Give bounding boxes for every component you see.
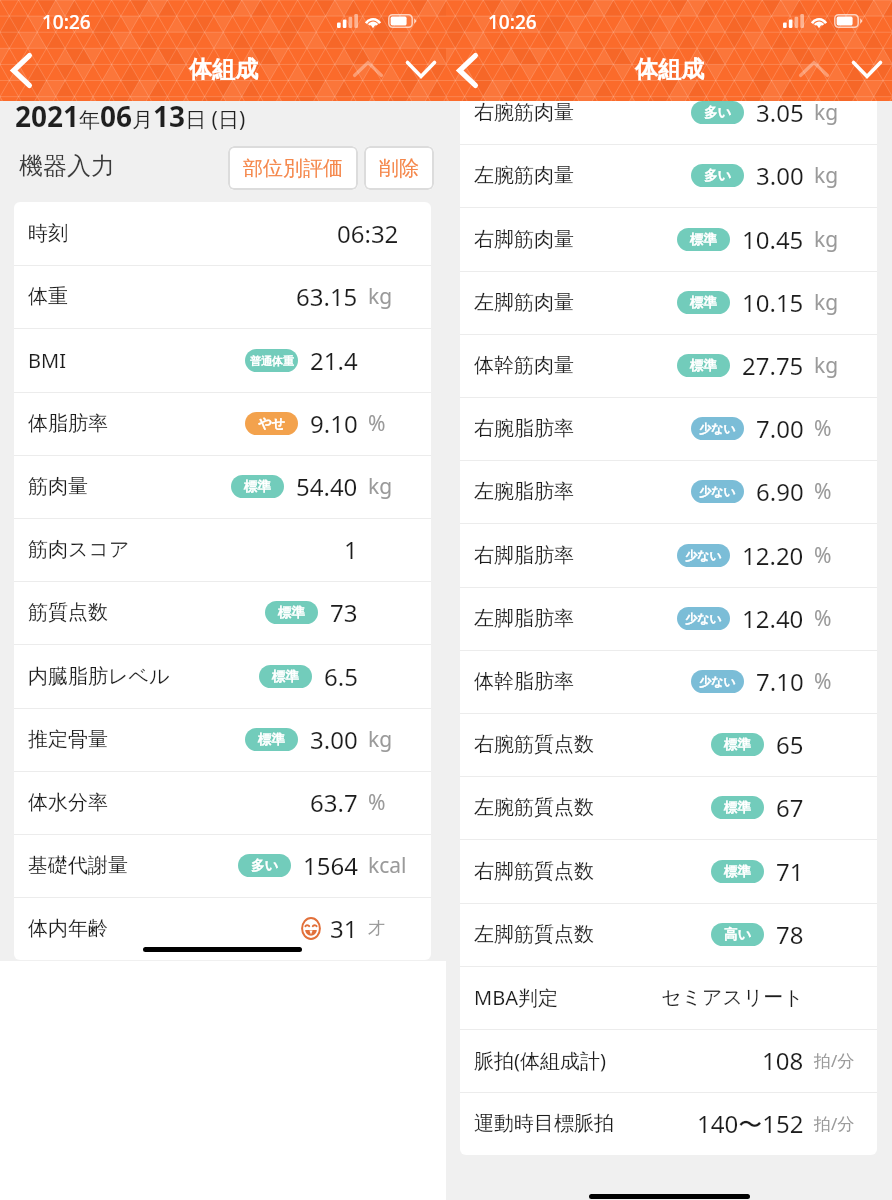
button[interactable]: 左脚脂肪率 bbox=[460, 587, 877, 650]
button[interactable]: 右腕筋肉量 bbox=[460, 81, 877, 144]
staticText: 普通体重 bbox=[250, 354, 294, 368]
button[interactable]: 内臓脂肪レベル bbox=[14, 644, 431, 708]
staticText: 体幹脂肪率 bbox=[474, 669, 574, 694]
button[interactable]: 基礎代謝量 bbox=[14, 834, 431, 897]
staticText: 筋肉スコア bbox=[28, 537, 130, 562]
staticText: 標準 bbox=[278, 604, 305, 621]
staticText: 標準 bbox=[258, 731, 285, 748]
button[interactable]: 右脚筋肉量 bbox=[460, 207, 877, 271]
button[interactable]: 左腕筋質点数 bbox=[460, 776, 877, 839]
staticText: 標準 bbox=[724, 863, 751, 880]
staticText: kg bbox=[368, 725, 393, 754]
button[interactable]: 左腕脂肪率 bbox=[460, 460, 877, 523]
button[interactable]: Back bbox=[0, 44, 48, 98]
button[interactable]: 左脚筋肉量 bbox=[460, 271, 877, 334]
staticText: 左腕脂肪率 bbox=[474, 479, 574, 504]
button[interactable]: Next record bbox=[398, 46, 444, 92]
button[interactable]: 部位別評価 bbox=[228, 146, 358, 190]
staticText: % bbox=[368, 409, 386, 438]
staticText: % bbox=[814, 477, 832, 506]
button[interactable]: 筋肉スコア bbox=[14, 518, 431, 581]
button[interactable]: 右腕筋質点数 bbox=[460, 713, 877, 776]
staticText: 12.20 bbox=[742, 539, 804, 572]
staticText: 7.00 bbox=[756, 412, 804, 445]
staticText: セミアスリート bbox=[661, 985, 804, 1010]
button[interactable]: 体水分率 bbox=[14, 771, 431, 834]
button[interactable]: Back bbox=[446, 44, 494, 98]
button[interactable]: 推定骨量 bbox=[14, 708, 431, 771]
staticText: 筋質点数 bbox=[28, 600, 108, 625]
button[interactable]: Previous record bbox=[345, 46, 391, 92]
button[interactable]: 筋肉量 bbox=[14, 455, 431, 518]
staticText: 多い bbox=[704, 167, 732, 184]
staticText: 少ない bbox=[685, 611, 722, 626]
staticText: 多い bbox=[251, 857, 279, 874]
button[interactable]: 運動時目標脈拍 bbox=[460, 1092, 877, 1155]
staticText: 10.45 bbox=[742, 223, 804, 256]
staticText: 右脚筋質点数 bbox=[474, 859, 594, 884]
staticText: 時刻 bbox=[28, 221, 68, 246]
staticText: BMI bbox=[28, 347, 66, 374]
staticText: kg bbox=[814, 161, 839, 190]
staticText: 右腕筋質点数 bbox=[474, 732, 594, 757]
staticText: 3.00 bbox=[756, 159, 804, 192]
button[interactable]: BMI bbox=[14, 328, 431, 392]
staticText: 拍/分 bbox=[814, 1049, 855, 1072]
staticText: 10.15 bbox=[742, 286, 804, 319]
button[interactable]: 左脚筋質点数 bbox=[460, 903, 877, 966]
staticText: 左脚脂肪率 bbox=[474, 606, 574, 631]
staticText: % bbox=[814, 667, 832, 696]
staticText: 基礎代謝量 bbox=[28, 853, 128, 878]
button[interactable]: 左腕筋肉量 bbox=[460, 144, 877, 207]
staticText: 右脚脂肪率 bbox=[474, 543, 574, 568]
button[interactable]: 体重 bbox=[14, 265, 431, 328]
staticText: 標準 bbox=[244, 478, 271, 495]
staticText: 12.40 bbox=[742, 602, 804, 635]
staticText: 体組成 bbox=[635, 55, 704, 84]
staticText: 少ない bbox=[699, 674, 736, 689]
button[interactable]: 右腕脂肪率 bbox=[460, 397, 877, 460]
staticText: 少ない bbox=[699, 484, 736, 499]
staticText: 体水分率 bbox=[28, 790, 108, 815]
button[interactable]: 脈拍(体組成計) bbox=[460, 1029, 877, 1092]
staticText: 10:26 bbox=[42, 9, 91, 35]
button[interactable]: 時刻 bbox=[14, 202, 431, 265]
staticText: 高い bbox=[724, 926, 752, 943]
staticText: 左腕筋肉量 bbox=[474, 163, 574, 188]
staticText: 体内年齢 bbox=[28, 916, 108, 941]
staticText: 108 bbox=[762, 1044, 804, 1077]
staticText: 1 bbox=[344, 533, 358, 566]
staticText: 内臓脂肪レベル bbox=[28, 664, 170, 689]
staticText: 71 bbox=[776, 855, 804, 888]
staticText: % bbox=[814, 541, 832, 570]
staticText: 標準 bbox=[272, 668, 299, 685]
button[interactable]: 体幹筋肉量 bbox=[460, 334, 877, 397]
staticText: 6.90 bbox=[756, 475, 804, 508]
staticText: 9.10 bbox=[310, 407, 358, 440]
staticText: kg bbox=[368, 472, 393, 501]
staticText: 右腕筋肉量 bbox=[474, 100, 574, 125]
staticText: 140〜152 bbox=[697, 1107, 804, 1140]
staticText: 右腕脂肪率 bbox=[474, 416, 574, 441]
button[interactable]: 体幹脂肪率 bbox=[460, 650, 877, 713]
staticText: kcal bbox=[368, 851, 407, 880]
button[interactable]: Previous record bbox=[791, 46, 837, 92]
staticText: 拍/分 bbox=[814, 1112, 855, 1135]
staticText: 6.5 bbox=[324, 660, 358, 693]
button[interactable]: MBA判定 bbox=[460, 966, 877, 1029]
button[interactable]: 右脚脂肪率 bbox=[460, 523, 877, 587]
staticText: 多い bbox=[704, 104, 732, 121]
staticText: 標準 bbox=[690, 357, 717, 374]
staticText: 31 bbox=[330, 912, 358, 945]
staticText: 3.00 bbox=[310, 723, 358, 756]
button[interactable]: 体脂肪率 bbox=[14, 392, 431, 455]
staticText: kg bbox=[814, 98, 839, 127]
staticText: 21.4 bbox=[310, 344, 358, 377]
staticText: 27.75 bbox=[742, 349, 804, 382]
button[interactable]: 筋質点数 bbox=[14, 581, 431, 644]
button[interactable]: 削除 bbox=[364, 146, 434, 190]
button[interactable]: Next record bbox=[844, 46, 890, 92]
button[interactable]: 右脚筋質点数 bbox=[460, 839, 877, 903]
staticText: kg bbox=[814, 225, 839, 254]
button[interactable]: 体内年齢 bbox=[14, 897, 431, 960]
